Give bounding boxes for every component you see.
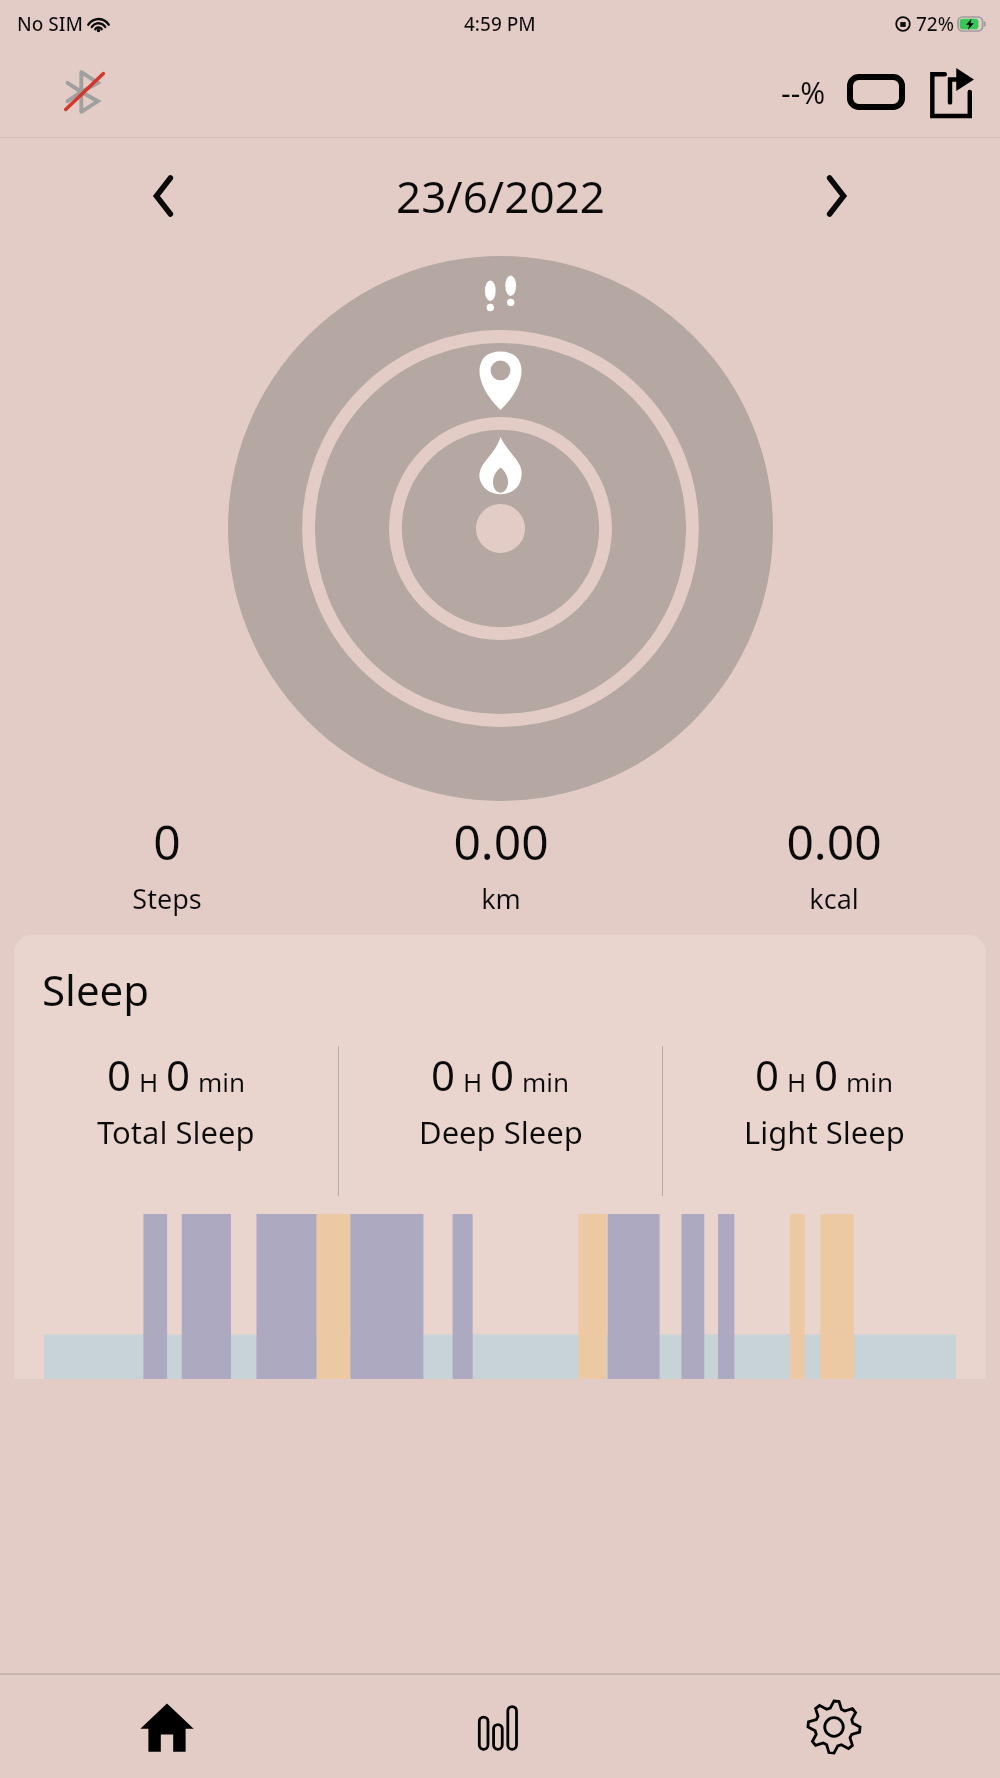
staticText: Deep Sleep	[419, 1111, 583, 1153]
staticText: Sleep	[42, 961, 150, 1018]
staticText: 72%	[916, 11, 954, 37]
button[interactable]: Statistics	[334, 1675, 667, 1778]
staticText: 0	[431, 1046, 456, 1103]
staticText: 0	[755, 1046, 780, 1103]
button[interactable]: 0	[339, 1046, 662, 1153]
button[interactable]: Sleep	[14, 935, 986, 1379]
staticText: H	[787, 1064, 807, 1099]
button[interactable]: Home	[0, 1675, 334, 1778]
staticText: H	[463, 1064, 483, 1099]
button[interactable]: 0	[0, 807, 334, 919]
staticText: Light Sleep	[744, 1111, 905, 1153]
button[interactable]: Previous day	[140, 172, 188, 220]
staticText: 0	[107, 1046, 132, 1103]
staticText: 0	[153, 809, 181, 874]
button[interactable]: 0.00	[334, 807, 667, 919]
staticText: 4:59 PM	[464, 11, 536, 37]
staticText: Total Sleep	[97, 1111, 255, 1153]
staticText: 0.00	[786, 809, 882, 874]
staticText: km	[481, 880, 521, 917]
button[interactable]: 0.00	[667, 807, 1000, 919]
staticText: Steps	[132, 880, 202, 917]
staticText: 0.00	[453, 809, 549, 874]
staticText: min	[198, 1064, 246, 1099]
button[interactable]: 0	[663, 1046, 986, 1153]
staticText: min	[846, 1064, 894, 1099]
button[interactable]: Bluetooth disconnected	[62, 69, 108, 115]
staticText: No SIM	[17, 11, 83, 37]
staticText: --%	[781, 72, 826, 113]
button[interactable]: Share	[924, 66, 976, 118]
button[interactable]: Next day	[812, 172, 860, 220]
button[interactable]: 0	[14, 1046, 338, 1153]
staticText: min	[522, 1064, 570, 1099]
button[interactable]: Settings	[667, 1675, 1000, 1778]
staticText: 23/6/2022	[396, 166, 605, 226]
staticText: 0	[814, 1046, 839, 1103]
staticText: 0	[166, 1046, 191, 1103]
staticText: 0	[490, 1046, 515, 1103]
staticText: H	[139, 1064, 159, 1099]
staticText: kcal	[809, 880, 859, 917]
